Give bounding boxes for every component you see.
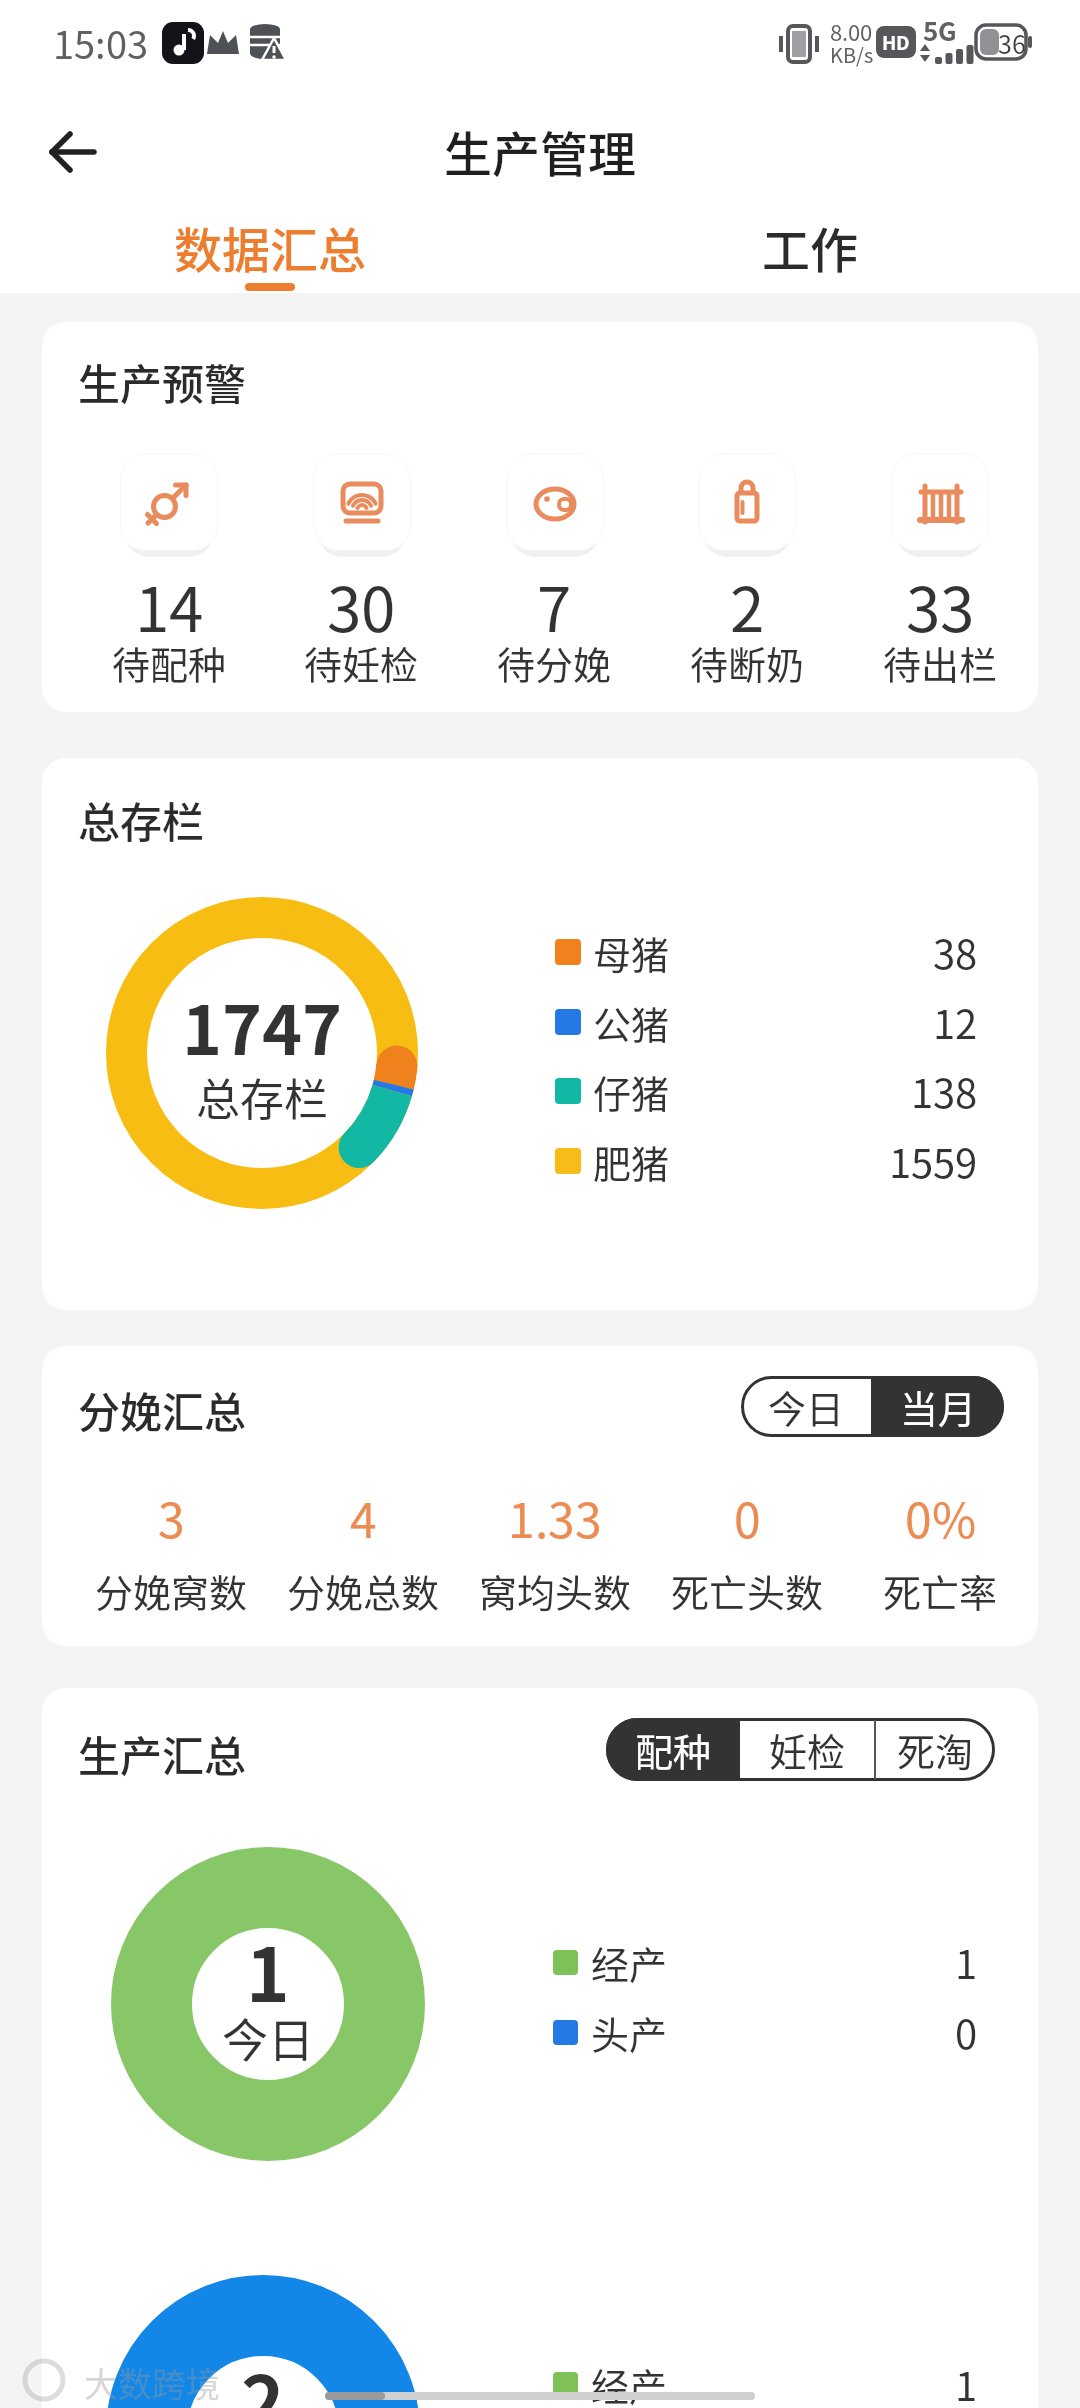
- button[interactable]: [313, 453, 411, 551]
- button[interactable]: [871, 1376, 1004, 1437]
- button[interactable]: [698, 453, 796, 551]
- button[interactable]: [0, 200, 540, 293]
- button[interactable]: [120, 453, 218, 551]
- button[interactable]: [540, 200, 1080, 293]
- button[interactable]: [874, 1718, 995, 1781]
- button[interactable]: [740, 1718, 874, 1781]
- button[interactable]: [741, 1376, 871, 1437]
- button[interactable]: [891, 453, 989, 551]
- button[interactable]: [606, 1718, 740, 1781]
- button[interactable]: [36, 124, 112, 180]
- button[interactable]: [506, 453, 604, 551]
